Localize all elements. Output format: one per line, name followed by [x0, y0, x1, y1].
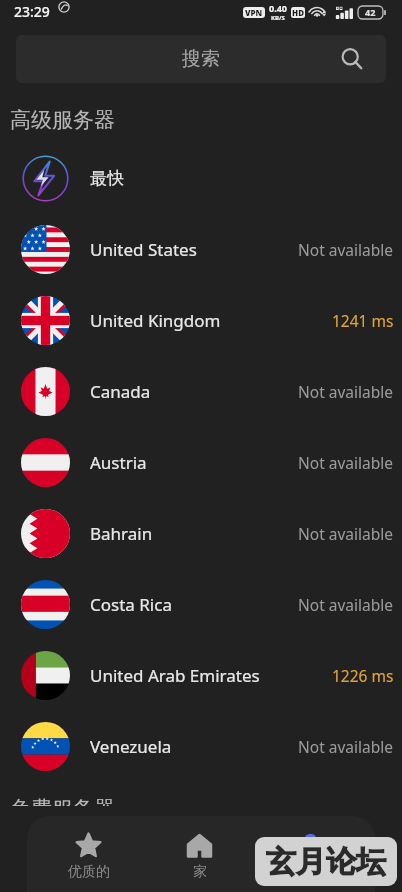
- staticText: 高级服务器: [10, 107, 115, 133]
- button[interactable]: Austria: [0, 427, 402, 498]
- staticText: Not available: [298, 523, 394, 544]
- staticText: KB/S: [271, 14, 285, 22]
- staticText: United Kingdom: [90, 309, 221, 332]
- staticText: United Arab Emirates: [90, 664, 260, 687]
- staticText: Not available: [298, 239, 394, 260]
- staticText: 23:29: [14, 2, 50, 21]
- staticText: HD: [292, 7, 304, 18]
- staticText: Austria: [90, 451, 147, 474]
- staticText: Venezuela: [90, 735, 172, 758]
- staticText: Canada: [90, 380, 151, 403]
- staticText: 玄月论坛: [266, 843, 386, 881]
- staticText: United States: [90, 238, 197, 261]
- button[interactable]: Bahrain: [0, 498, 402, 569]
- button[interactable]: United Kingdom: [0, 285, 402, 356]
- staticText: 42: [365, 6, 376, 18]
- staticText: 1226 ms: [332, 665, 394, 686]
- staticText: VPN: [245, 7, 263, 18]
- button[interactable]: 搜索: [16, 35, 386, 83]
- staticText: Not available: [298, 594, 394, 615]
- button[interactable]: 最快: [0, 143, 402, 214]
- button[interactable]: Canada: [0, 356, 402, 427]
- staticText: 优质的: [68, 863, 110, 881]
- staticText: Not available: [298, 452, 394, 473]
- staticText: 我的: [297, 863, 325, 881]
- button[interactable]: United Arab Emirates: [0, 640, 402, 711]
- staticText: 最快: [90, 168, 124, 189]
- staticText: Not available: [298, 381, 394, 402]
- staticText: 免费服务器: [10, 796, 115, 806]
- button[interactable]: Venezuela: [0, 711, 402, 782]
- button[interactable]: 优质的: [33, 816, 144, 892]
- other: Search: [341, 48, 364, 71]
- button[interactable]: 家: [144, 816, 255, 892]
- staticText: 家: [193, 863, 207, 881]
- staticText: 搜索: [182, 47, 220, 71]
- staticText: 1241 ms: [332, 310, 394, 331]
- staticText: 0.40: [269, 2, 287, 14]
- button[interactable]: United States: [0, 214, 402, 285]
- staticText: Costa Rica: [90, 593, 172, 616]
- button[interactable]: Costa Rica: [0, 569, 402, 640]
- staticText: Not available: [298, 736, 394, 757]
- button[interactable]: 我的: [255, 816, 366, 892]
- staticText: Bahrain: [90, 522, 153, 545]
